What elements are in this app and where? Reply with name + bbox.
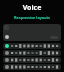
button[interactable] xyxy=(3,64,61,70)
button[interactable] xyxy=(3,24,61,41)
button[interactable] xyxy=(3,57,61,63)
staticText: Voice xyxy=(0,3,64,13)
button[interactable] xyxy=(3,50,61,56)
staticText: Responsive layouts xyxy=(0,15,64,20)
button[interactable] xyxy=(3,43,61,49)
